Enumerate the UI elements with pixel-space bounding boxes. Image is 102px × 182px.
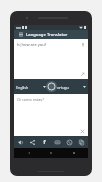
button[interactable]: Expand input xyxy=(80,72,85,77)
button[interactable]: English xyxy=(16,83,46,91)
button[interactable]: Voice input xyxy=(80,42,85,47)
button[interactable]: Copy xyxy=(76,136,87,148)
button[interactable]: Send message xyxy=(52,136,63,148)
button[interactable]: Portuguese xyxy=(55,83,86,91)
button[interactable]: Home xyxy=(43,148,59,158)
staticText: English xyxy=(16,85,29,90)
button[interactable]: Swap languages xyxy=(46,81,57,92)
button[interactable]: Share on WhatsApp xyxy=(64,136,75,148)
button[interactable]: Open navigation menu xyxy=(17,31,24,38)
staticText: hi,how are you? xyxy=(17,42,47,47)
button[interactable]: Recent apps xyxy=(66,148,82,158)
staticText: Portuguese xyxy=(55,85,69,90)
staticText: Language Translator xyxy=(26,32,68,38)
button[interactable]: Clear translation xyxy=(79,128,85,134)
button[interactable]: Share on Facebook xyxy=(39,136,50,148)
button[interactable]: Share xyxy=(27,136,38,148)
staticText: f xyxy=(43,138,46,146)
button[interactable]: Back xyxy=(21,148,37,158)
staticText: Oi como estas? xyxy=(17,97,44,102)
button[interactable]: Speak xyxy=(15,136,26,148)
